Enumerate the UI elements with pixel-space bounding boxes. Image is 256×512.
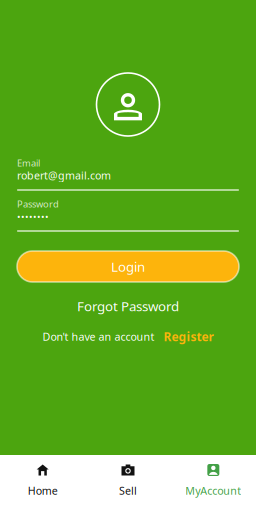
button[interactable]: Sell <box>85 455 171 512</box>
button[interactable]: MyAccount <box>171 455 256 512</box>
staticText: Forgot Password <box>77 297 179 315</box>
staticText: Email <box>17 157 40 169</box>
button[interactable]: Email <box>17 158 239 191</box>
staticText: MyAccount <box>185 483 241 498</box>
button[interactable]: Password <box>17 199 239 232</box>
button[interactable]: Home <box>0 455 85 512</box>
button[interactable]: Login <box>17 251 239 282</box>
staticText: Login <box>111 258 145 275</box>
button[interactable]: Register <box>163 328 213 344</box>
button[interactable]: Forgot Password <box>17 299 239 313</box>
staticText: •••••••• <box>17 210 49 223</box>
staticText: Don't have an account <box>42 329 154 344</box>
staticText: Sell <box>119 483 137 498</box>
staticText: Register <box>163 328 213 344</box>
staticText: Password <box>17 198 59 210</box>
staticText: Home <box>28 483 58 498</box>
staticText: robert@gmail.com <box>17 168 111 182</box>
